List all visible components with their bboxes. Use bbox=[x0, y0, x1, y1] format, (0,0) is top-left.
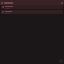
button[interactable] bbox=[1, 5, 63, 9]
button[interactable]: Menu bbox=[1, 2, 3, 4]
button[interactable]: Menu bbox=[0, 0, 64, 5]
button[interactable] bbox=[1, 10, 63, 14]
